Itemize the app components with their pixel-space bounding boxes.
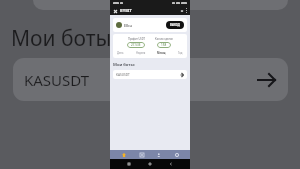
button[interactable]: KASUSDT: [113, 70, 187, 79]
button[interactable]: Profile: [155, 151, 162, 158]
staticText: 27.53$: [131, 43, 141, 47]
button[interactable]: Close: [113, 9, 117, 13]
staticText: KASUSDT: [24, 70, 90, 90]
staticText: Кол-во сделок: [155, 37, 173, 41]
staticText: KASUSDT: [116, 73, 130, 77]
button[interactable]: Back: [169, 162, 173, 166]
staticText: Месяц: [157, 51, 166, 55]
button[interactable]: More options: [186, 8, 187, 13]
staticText: BYBIT: [120, 8, 132, 13]
staticText: Мои боты:: [11, 24, 118, 53]
staticText: День: [117, 51, 124, 55]
staticText: ВЫХОД: [170, 23, 180, 27]
button[interactable]: Неделя: [135, 51, 147, 55]
button[interactable]: [33, 0, 288, 10]
button[interactable]: Профит USDT: [113, 34, 187, 58]
button[interactable]: Год: [177, 51, 184, 55]
staticText: 158: [161, 43, 167, 47]
button[interactable]: ВЫХОД: [166, 21, 184, 29]
button[interactable]: Stats: [138, 151, 145, 158]
other: Open: [257, 70, 277, 90]
button[interactable]: Home: [148, 162, 152, 166]
button[interactable]: День: [116, 51, 125, 55]
staticText: Мои боты:: [113, 62, 135, 68]
button[interactable]: Home: [120, 151, 127, 158]
staticText: Неделя: [136, 51, 146, 55]
button[interactable]: Recents: [127, 162, 131, 166]
staticText: Профит USDT: [128, 37, 145, 41]
button[interactable]: Expand: [180, 9, 184, 13]
button[interactable]: Месяц: [156, 51, 167, 55]
button[interactable]: Elku: [113, 18, 187, 32]
staticText: Год: [178, 51, 183, 55]
button[interactable]: Settings: [173, 151, 180, 158]
button[interactable]: KASUSDT: [13, 58, 288, 101]
staticText: Elku: [124, 23, 133, 28]
